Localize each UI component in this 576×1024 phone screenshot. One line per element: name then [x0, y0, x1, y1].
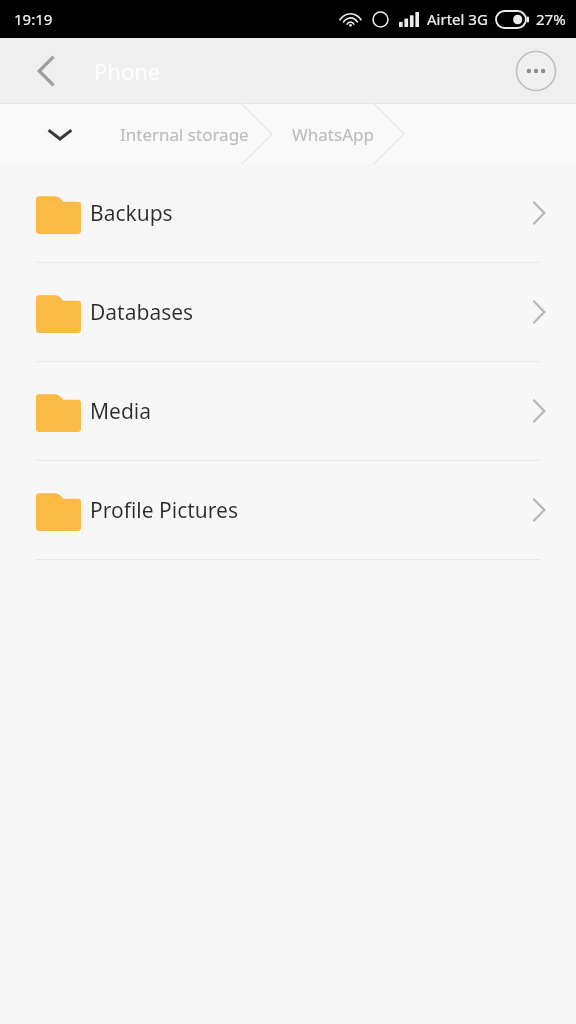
button[interactable]: WhatsApp	[292, 123, 374, 146]
staticText: Phone	[94, 56, 161, 86]
button[interactable]: Back	[24, 49, 68, 93]
staticText: 27%	[536, 9, 566, 29]
staticText: Backups	[90, 199, 173, 228]
staticText: Media	[90, 397, 152, 426]
button[interactable]: Profile Pictures	[0, 461, 576, 559]
button[interactable]: Backups	[0, 164, 576, 262]
staticText: Internal storage	[120, 123, 249, 146]
button[interactable]: Collapse path	[36, 110, 84, 158]
button[interactable]: Internal storage	[120, 123, 249, 146]
staticText: Profile Pictures	[90, 496, 238, 525]
button[interactable]: Media	[0, 362, 576, 460]
staticText: Airtel 3G	[427, 9, 488, 29]
button[interactable]: Databases	[0, 263, 576, 361]
staticText: WhatsApp	[292, 123, 374, 146]
staticText: Databases	[90, 298, 194, 327]
staticText: 19:19	[14, 9, 53, 29]
button[interactable]: More options	[514, 49, 558, 93]
